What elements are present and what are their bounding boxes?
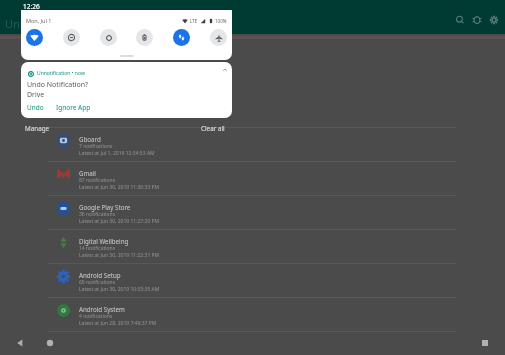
button[interactable]: Do not disturb [63, 29, 80, 46]
button[interactable]: Gboard [0, 128, 505, 162]
button[interactable]: Auto-rotate [100, 29, 117, 46]
button[interactable]: Settings [487, 13, 501, 27]
button[interactable]: Search [453, 13, 467, 27]
staticText: 4 notifications [79, 313, 113, 320]
staticText: Mon, Jul 1 [26, 17, 52, 24]
button[interactable]: Home [40, 333, 60, 353]
button[interactable]: Undo [27, 103, 44, 112]
button[interactable]: Recents [475, 333, 495, 353]
button[interactable]: Digital Wellbeing [0, 230, 505, 264]
staticText: Google Play Store [79, 203, 131, 211]
button[interactable]: Manage [25, 124, 50, 133]
staticText: 60 notifications [79, 279, 116, 286]
staticText: Unnotification • now [37, 70, 85, 77]
button[interactable]: Gmail [0, 162, 505, 196]
button[interactable]: Airplane mode [210, 29, 227, 46]
staticText: Android System [79, 305, 125, 313]
button[interactable]: Google Play Store [0, 196, 505, 230]
button[interactable]: Ignore App [56, 103, 91, 112]
button[interactable]: Clear all [201, 124, 225, 133]
button[interactable]: Back [10, 333, 30, 353]
staticText: 87 notifications [79, 177, 116, 184]
button[interactable]: Android System [0, 298, 505, 332]
staticText: Latest at Jun 30, 2019 10:53:35 AM [79, 286, 160, 293]
staticText: Android Setup [79, 271, 121, 279]
staticText: 100% [215, 18, 227, 24]
staticText: Latest at Jun 28, 2019 7:49:37 PM [79, 320, 157, 327]
staticText: Gmail [79, 169, 96, 177]
staticText: Undo Notification? [27, 80, 89, 90]
staticText: Latest at Jun 30, 2019 11:22:31 PM [79, 252, 160, 259]
button[interactable]: Battery saver [136, 29, 153, 46]
staticText: LTE [190, 18, 198, 24]
staticText: Unnotification [5, 16, 79, 31]
button[interactable]: Unnotification • now [21, 62, 232, 118]
staticText: 14 notifications [79, 245, 116, 252]
staticText: Digital Wellbeing [79, 237, 129, 245]
staticText: Gboard [79, 135, 101, 143]
staticText: Latest at Jul 1, 2019 12:34:53 AM [79, 150, 155, 157]
staticText: Latest at Jun 30, 2019 11:27:20 PM [79, 218, 160, 225]
staticText: 36 notifications [79, 211, 116, 218]
button[interactable]: Mobile data [173, 29, 190, 46]
button[interactable]: Collapse [221, 66, 229, 74]
staticText: 12:26 [23, 2, 40, 11]
button[interactable]: Bug report [470, 13, 484, 27]
button[interactable]: Wi-Fi [26, 29, 43, 46]
button[interactable]: Android Setup [0, 264, 505, 298]
staticText: Latest at Jun 30, 2019 11:30:33 PM [79, 184, 160, 191]
staticText: Drive [27, 90, 45, 100]
staticText: 7 notifications [79, 143, 113, 150]
